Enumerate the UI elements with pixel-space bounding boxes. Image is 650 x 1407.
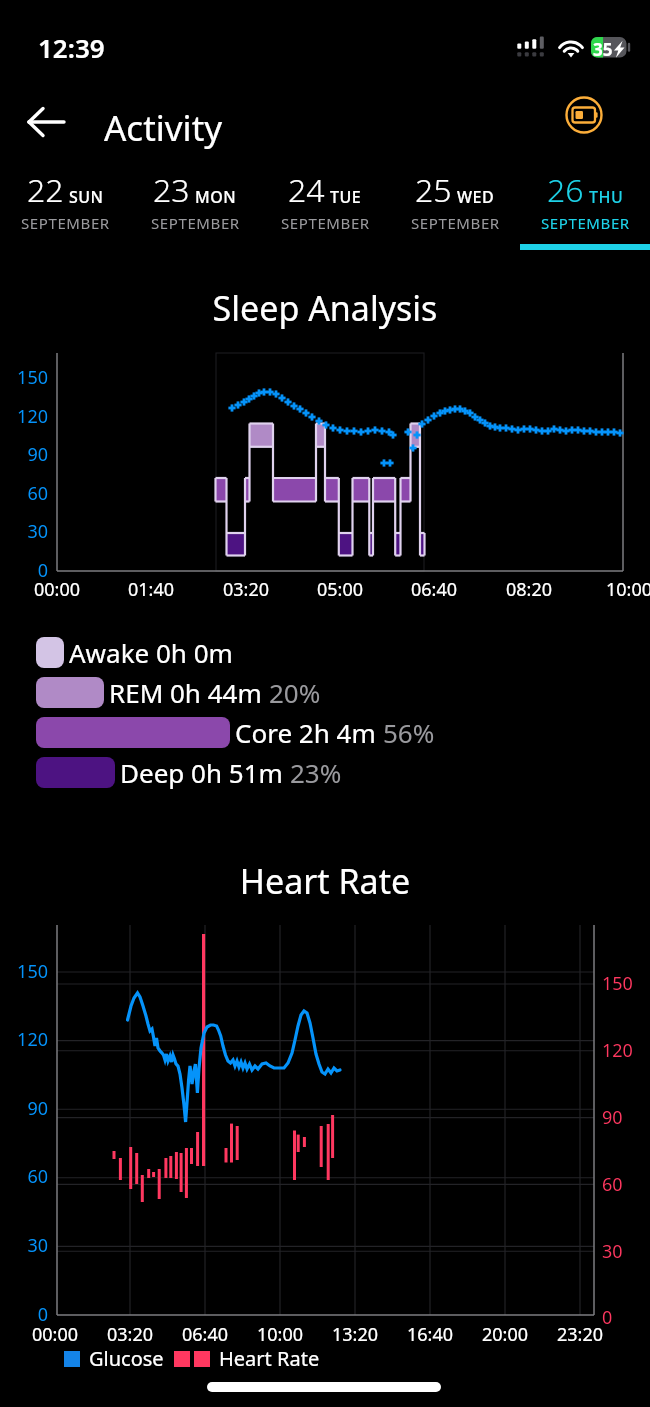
button[interactable]: Back xyxy=(14,90,78,154)
staticText: 23 xyxy=(153,168,190,212)
staticText: 23% xyxy=(290,755,342,790)
staticText: THU xyxy=(589,186,624,208)
button[interactable]: 23 xyxy=(130,168,260,250)
staticText: 10:00 xyxy=(593,577,650,602)
staticText: SUN xyxy=(69,186,104,208)
staticText: 0 xyxy=(602,1305,648,1330)
staticText: WED xyxy=(457,186,495,208)
staticText: SEPTEMBER xyxy=(541,213,630,233)
staticText: 30 xyxy=(0,1233,48,1258)
staticText: 03:20 xyxy=(94,1322,166,1347)
staticText: 12:39 xyxy=(38,30,105,65)
staticText: 150 xyxy=(0,959,48,984)
button[interactable]: 22 xyxy=(0,168,130,250)
staticText: MON xyxy=(195,186,237,208)
button[interactable]: Battery xyxy=(556,87,612,143)
staticText: 60 xyxy=(0,481,48,506)
staticText: TUE xyxy=(330,186,362,208)
staticText: Heart Rate xyxy=(219,1345,320,1372)
staticText: 23:20 xyxy=(544,1322,616,1347)
staticText: 56% xyxy=(383,715,435,750)
staticText: 01:40 xyxy=(115,577,187,602)
staticText: 06:40 xyxy=(169,1322,241,1347)
staticText: 30 xyxy=(602,1239,648,1264)
staticText: 90 xyxy=(0,442,48,467)
button[interactable]: 26 xyxy=(520,168,650,250)
staticText: Deep 0h 51m xyxy=(120,755,283,790)
staticText: 16:40 xyxy=(394,1322,466,1347)
staticText: 120 xyxy=(0,404,48,429)
staticText: 10:00 xyxy=(244,1322,316,1347)
staticText: 06:40 xyxy=(398,577,470,602)
staticText: 25 xyxy=(415,168,452,212)
staticText: 120 xyxy=(0,1027,48,1052)
staticText: 90 xyxy=(0,1096,48,1121)
staticText: 13:20 xyxy=(319,1322,391,1347)
staticText: REM 0h 44m xyxy=(109,675,262,710)
staticText: 60 xyxy=(0,1164,48,1189)
staticText: SEPTEMBER xyxy=(411,213,500,233)
staticText: Heart Rate xyxy=(0,858,650,904)
staticText: 08:20 xyxy=(493,577,565,602)
staticText: 0 xyxy=(0,1302,48,1327)
staticText: 150 xyxy=(602,971,648,996)
staticText: 24 xyxy=(288,168,325,212)
staticText: 00:00 xyxy=(21,577,93,602)
staticText: 120 xyxy=(602,1038,648,1063)
staticText: Awake 0h 0m xyxy=(69,635,233,670)
staticText: SEPTEMBER xyxy=(151,213,240,233)
staticText: 26 xyxy=(547,168,584,212)
staticText: 05:00 xyxy=(304,577,376,602)
staticText: Core 2h 4m xyxy=(235,715,376,750)
staticText: Activity xyxy=(104,104,223,152)
staticText: 90 xyxy=(602,1105,648,1130)
staticText: Glucose xyxy=(89,1345,164,1372)
staticText: Sleep Analysis xyxy=(0,285,650,331)
staticText: 60 xyxy=(602,1172,648,1197)
staticText: 0 xyxy=(0,558,48,583)
staticText: 35 xyxy=(593,38,613,61)
staticText: SEPTEMBER xyxy=(281,213,370,233)
staticText: 150 xyxy=(0,365,48,390)
button[interactable]: 24 xyxy=(260,168,390,250)
staticText: 20% xyxy=(269,675,321,710)
staticText: 20:00 xyxy=(469,1322,541,1347)
staticText: 03:20 xyxy=(210,577,282,602)
staticText: 30 xyxy=(0,519,48,544)
button[interactable]: 25 xyxy=(390,168,520,250)
staticText: SEPTEMBER xyxy=(21,213,110,233)
staticText: 00:00 xyxy=(19,1322,91,1347)
staticText: 22 xyxy=(27,168,64,212)
